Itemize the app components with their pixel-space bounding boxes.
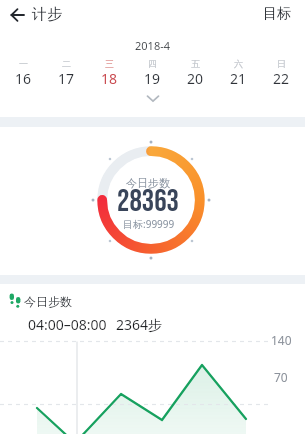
staticText: 四 <box>148 58 157 69</box>
staticText: 今日步数 <box>126 176 170 190</box>
staticText: 70 <box>274 369 288 385</box>
button[interactable]: 目标 <box>263 5 305 23</box>
button[interactable]: 二 <box>45 58 88 88</box>
staticText: 计步 <box>32 5 62 24</box>
button[interactable]: 一 <box>2 58 45 88</box>
staticText: 二 <box>62 58 71 69</box>
staticText: 三 <box>105 58 114 69</box>
staticText: 28363 <box>117 183 179 220</box>
staticText: 18 <box>101 69 118 88</box>
staticText: 五 <box>191 58 200 69</box>
button[interactable] <box>146 95 160 103</box>
button[interactable]: 计步 <box>0 5 62 24</box>
button[interactable]: 四 <box>131 58 174 88</box>
button[interactable]: 三 <box>88 58 131 88</box>
staticText: 22 <box>273 69 290 88</box>
button[interactable]: 今日步数 <box>0 290 305 312</box>
staticText: 04:00–08:00 <box>28 315 107 334</box>
button[interactable]: 日 <box>260 58 303 88</box>
staticText: 2018-4 <box>135 38 171 53</box>
staticText: 六 <box>234 58 243 69</box>
staticText: 2364步 <box>116 315 163 334</box>
staticText: 140 <box>271 332 292 348</box>
staticText: 目标:99999 <box>123 217 175 231</box>
staticText: 今日步数 <box>24 294 72 309</box>
staticText: 16 <box>15 69 32 88</box>
staticText: 21 <box>230 69 247 88</box>
button[interactable]: 五 <box>174 58 217 88</box>
button[interactable]: 六 <box>217 58 260 88</box>
staticText: 一 <box>19 58 28 69</box>
staticText: 20 <box>187 69 204 88</box>
staticText: 目标 <box>263 5 291 23</box>
staticText: 日 <box>277 58 286 69</box>
staticText: 19 <box>144 69 161 88</box>
staticText: 17 <box>58 69 75 88</box>
